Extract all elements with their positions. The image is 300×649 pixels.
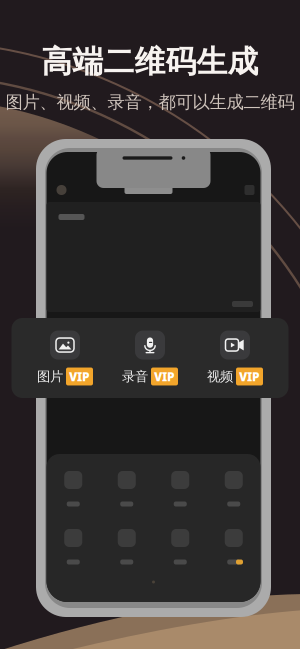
staticText: 图片: [37, 368, 63, 385]
staticText: VIP: [69, 368, 90, 384]
staticText: 高端二维码生成: [41, 43, 258, 81]
staticText: VIP: [154, 368, 175, 384]
staticText: 视频: [207, 368, 233, 385]
staticText: 图片、视频、录音，都可以生成二维码: [5, 92, 294, 113]
button[interactable]: 图片: [22, 318, 107, 398]
staticText: VIP: [239, 368, 260, 384]
button[interactable]: 视频: [192, 318, 277, 398]
staticText: 录音: [122, 368, 148, 385]
button[interactable]: 录音: [107, 318, 192, 398]
